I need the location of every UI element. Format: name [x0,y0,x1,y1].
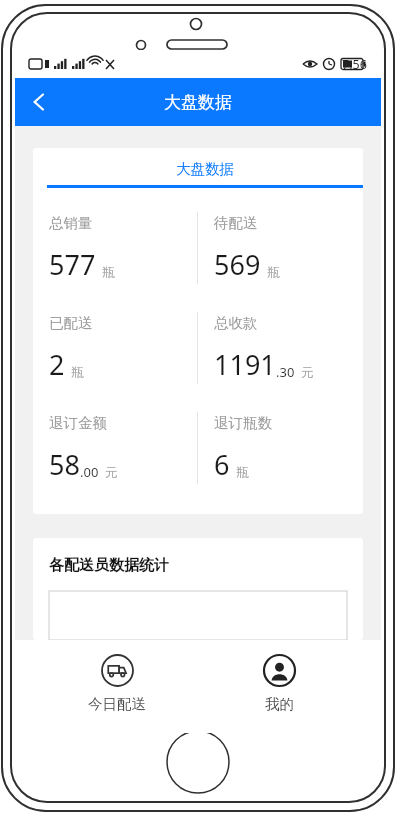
staticText: 元 [301,365,314,381]
staticText: 6 [214,446,230,483]
staticText: 瓶 [71,365,84,381]
staticText: 退订瓶数 [214,414,272,432]
button[interactable]: 我的 [219,640,339,733]
button[interactable]: 今日配送 [57,640,177,733]
staticText: 元 [105,465,118,481]
staticText: 瓶 [102,265,115,281]
staticText: 退订金额 [49,414,107,432]
staticText: 总收款 [214,314,258,332]
staticText: 已配送 [49,314,93,332]
staticText: 待配送 [214,214,258,232]
staticText: 瓶 [267,265,280,281]
other: 今日配送 [101,654,134,687]
button[interactable]: Back [15,78,63,126]
other: 我的 [263,654,296,687]
staticText: 1191 [214,346,276,383]
staticText: 569 [214,246,261,283]
staticText: 今日配送 [88,695,146,713]
staticText: 大盘数据 [164,92,232,113]
staticText: 大盘数据 [176,160,234,178]
staticText: 各配送员数据统计 [49,556,169,575]
staticText: .00 [80,463,99,481]
button[interactable]: 大盘数据 [47,148,363,188]
staticText: 577 [49,246,96,283]
staticText: 58 [49,446,80,483]
staticText: 我的 [265,695,294,713]
staticText: 总销量 [49,214,93,232]
staticText: .30 [276,363,295,381]
staticText: 2 [49,346,65,383]
staticText: 瓶 [236,465,249,481]
staticText: 7:56 [342,56,367,73]
